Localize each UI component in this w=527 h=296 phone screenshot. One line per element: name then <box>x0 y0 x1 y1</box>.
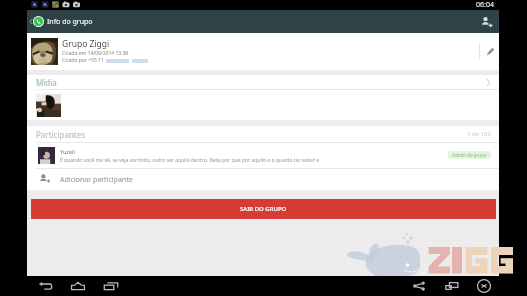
staticText: SAIR DO GRUPO <box>240 205 287 213</box>
staticText: 1 de 100 <box>467 130 491 138</box>
button[interactable]: Adicionar participante <box>27 169 499 190</box>
staticText: Adicionar participante <box>60 175 133 185</box>
button[interactable]: Recent apps <box>102 277 120 295</box>
button[interactable]: Close <box>475 277 493 295</box>
staticText: Criado por +55 11 <box>62 57 106 64</box>
staticText: Criado em 14/06/2014 13:38 <box>62 50 129 57</box>
button[interactable]: Edit group subject <box>482 33 499 70</box>
button[interactable]: Back <box>36 277 54 295</box>
staticText: 06:04 <box>476 0 494 10</box>
staticText: Info do grupo <box>47 17 93 27</box>
button[interactable]: Share <box>410 277 428 295</box>
staticText: Admin do grupo <box>452 152 487 158</box>
staticText: Yuzeli <box>60 148 75 155</box>
staticText: Participantes <box>36 129 86 140</box>
button[interactable]: SAIR DO GRUPO <box>31 199 496 219</box>
button[interactable]: Back <box>27 10 34 33</box>
button[interactable]: Mídia <box>27 75 499 120</box>
button[interactable]: Yuzeli <box>27 143 499 168</box>
button[interactable]: Screenshot <box>443 277 461 295</box>
staticText: Mídia <box>36 77 57 88</box>
button[interactable]: Add participant <box>473 10 499 33</box>
staticText: Grupo Ziggi <box>62 38 110 50</box>
staticText: É quando você me vê, se veja sorrindo, o… <box>60 157 320 164</box>
button[interactable]: Home <box>69 277 87 295</box>
